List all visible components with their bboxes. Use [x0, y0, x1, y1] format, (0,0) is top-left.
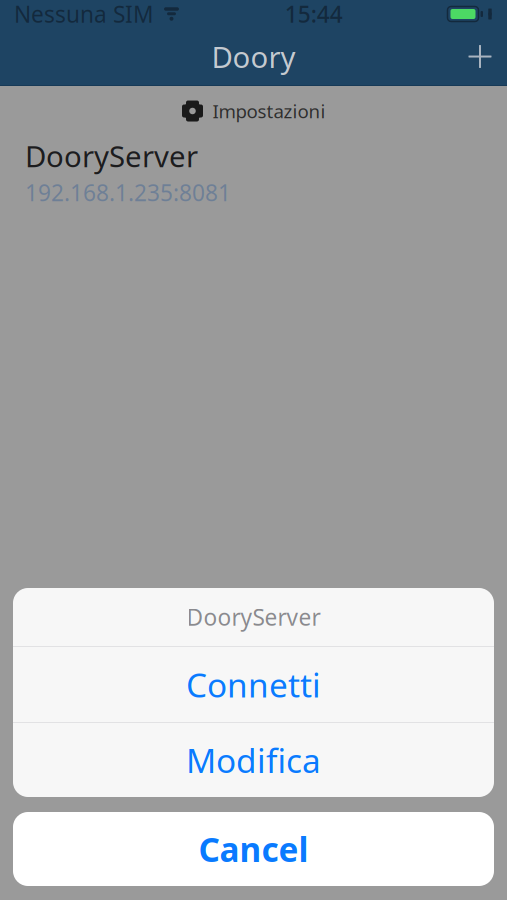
staticText: 15:44	[285, 0, 343, 29]
button[interactable]: DooryServer	[0, 136, 507, 198]
staticText: 192.168.1.235:8081	[25, 177, 231, 207]
staticText: DooryServer	[25, 136, 198, 175]
staticText: Doory	[211, 37, 295, 76]
staticText: Nessuna SIM	[14, 0, 154, 29]
button[interactable]: Modifica	[13, 723, 494, 797]
button[interactable]: Impostazioni	[0, 86, 507, 136]
staticText: Connetti	[186, 662, 321, 707]
button[interactable]: Cancel	[13, 812, 494, 886]
staticText: Modifica	[186, 738, 321, 782]
button[interactable]: Add server	[453, 28, 507, 85]
staticText: Cancel	[198, 827, 308, 871]
staticText: DooryServer	[186, 602, 320, 632]
staticText: Impostazioni	[212, 99, 325, 123]
button[interactable]: Connetti	[13, 647, 494, 722]
